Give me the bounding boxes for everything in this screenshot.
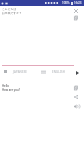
staticText: How are you? <box>2 88 20 92</box>
button[interactable]: ENGLISH <box>52 67 65 76</box>
button[interactable]: Play translation <box>73 68 82 77</box>
button[interactable]: Copy source text <box>71 13 81 23</box>
staticText: 100% <box>62 1 70 5</box>
button[interactable]: Listen <box>71 101 81 111</box>
button[interactable]: JAPANESE <box>2 67 30 76</box>
button[interactable]: Clear text <box>71 6 81 16</box>
staticText: こんにちは <box>2 7 17 11</box>
staticText: Hello <box>2 84 9 88</box>
staticText: ENGLISH <box>52 70 65 74</box>
button[interactable]: Swap languages <box>39 67 48 76</box>
button[interactable]: Copy translation <box>71 83 81 93</box>
button[interactable]: Share <box>71 92 81 102</box>
staticText: JAPANESE <box>13 70 28 74</box>
staticText: お元気ですか？ <box>2 11 22 15</box>
staticText: 16:23 <box>74 1 82 5</box>
